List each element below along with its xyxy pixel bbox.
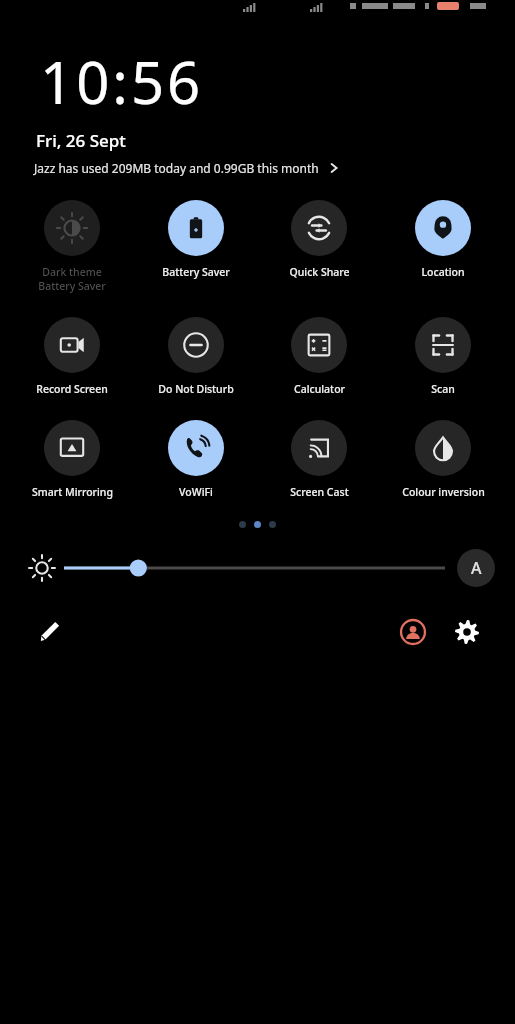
button[interactable]: Location bbox=[384, 198, 502, 279]
button[interactable]: Do Not Disturb bbox=[137, 315, 255, 396]
button[interactable]: Auto brightness bbox=[457, 549, 495, 587]
staticText: Calculator bbox=[294, 382, 345, 396]
staticText: Battery Saver bbox=[162, 265, 230, 279]
button[interactable]: Scan bbox=[384, 315, 502, 396]
staticText: Jazz has used 209MB today and 0.99GB thi… bbox=[34, 160, 319, 176]
staticText: VoWiFi bbox=[179, 485, 213, 499]
staticText: Screen Cast bbox=[290, 485, 349, 499]
button[interactable]: Dark theme Battery Saver bbox=[13, 198, 131, 293]
button[interactable]: VoWiFi bbox=[137, 418, 255, 499]
button[interactable]: Brightness bbox=[24, 550, 60, 586]
staticText: Scan bbox=[431, 382, 455, 396]
button[interactable]: Jazz has used 209MB today and 0.99GB thi… bbox=[34, 160, 341, 176]
button[interactable]: Calculator bbox=[260, 315, 378, 396]
staticText: Colour inversion bbox=[402, 485, 485, 499]
button[interactable]: Smart Mirroring bbox=[13, 418, 131, 499]
button[interactable]: Edit tiles bbox=[30, 612, 70, 652]
staticText: Fri, 26 Sept bbox=[36, 129, 126, 152]
staticText: Smart Mirroring bbox=[32, 485, 113, 499]
staticText: Quick Share bbox=[289, 265, 350, 279]
staticText: Location bbox=[421, 265, 465, 279]
button[interactable]: Record Screen bbox=[13, 315, 131, 396]
staticText: Do Not Disturb bbox=[158, 382, 234, 396]
staticText: A bbox=[471, 557, 482, 579]
button[interactable]: Screen Cast bbox=[260, 418, 378, 499]
button[interactable]: Quick Share bbox=[260, 198, 378, 279]
staticText: 10:56 bbox=[40, 42, 204, 121]
button[interactable]: Colour inversion bbox=[384, 418, 502, 499]
button[interactable]: Brightness slider bbox=[64, 553, 445, 583]
button[interactable]: Settings bbox=[447, 612, 487, 652]
button[interactable]: Battery Saver bbox=[137, 198, 255, 279]
staticText: Record Screen bbox=[36, 382, 108, 396]
staticText: Dark theme Battery Saver bbox=[38, 265, 106, 293]
button[interactable]: User account bbox=[393, 612, 433, 652]
